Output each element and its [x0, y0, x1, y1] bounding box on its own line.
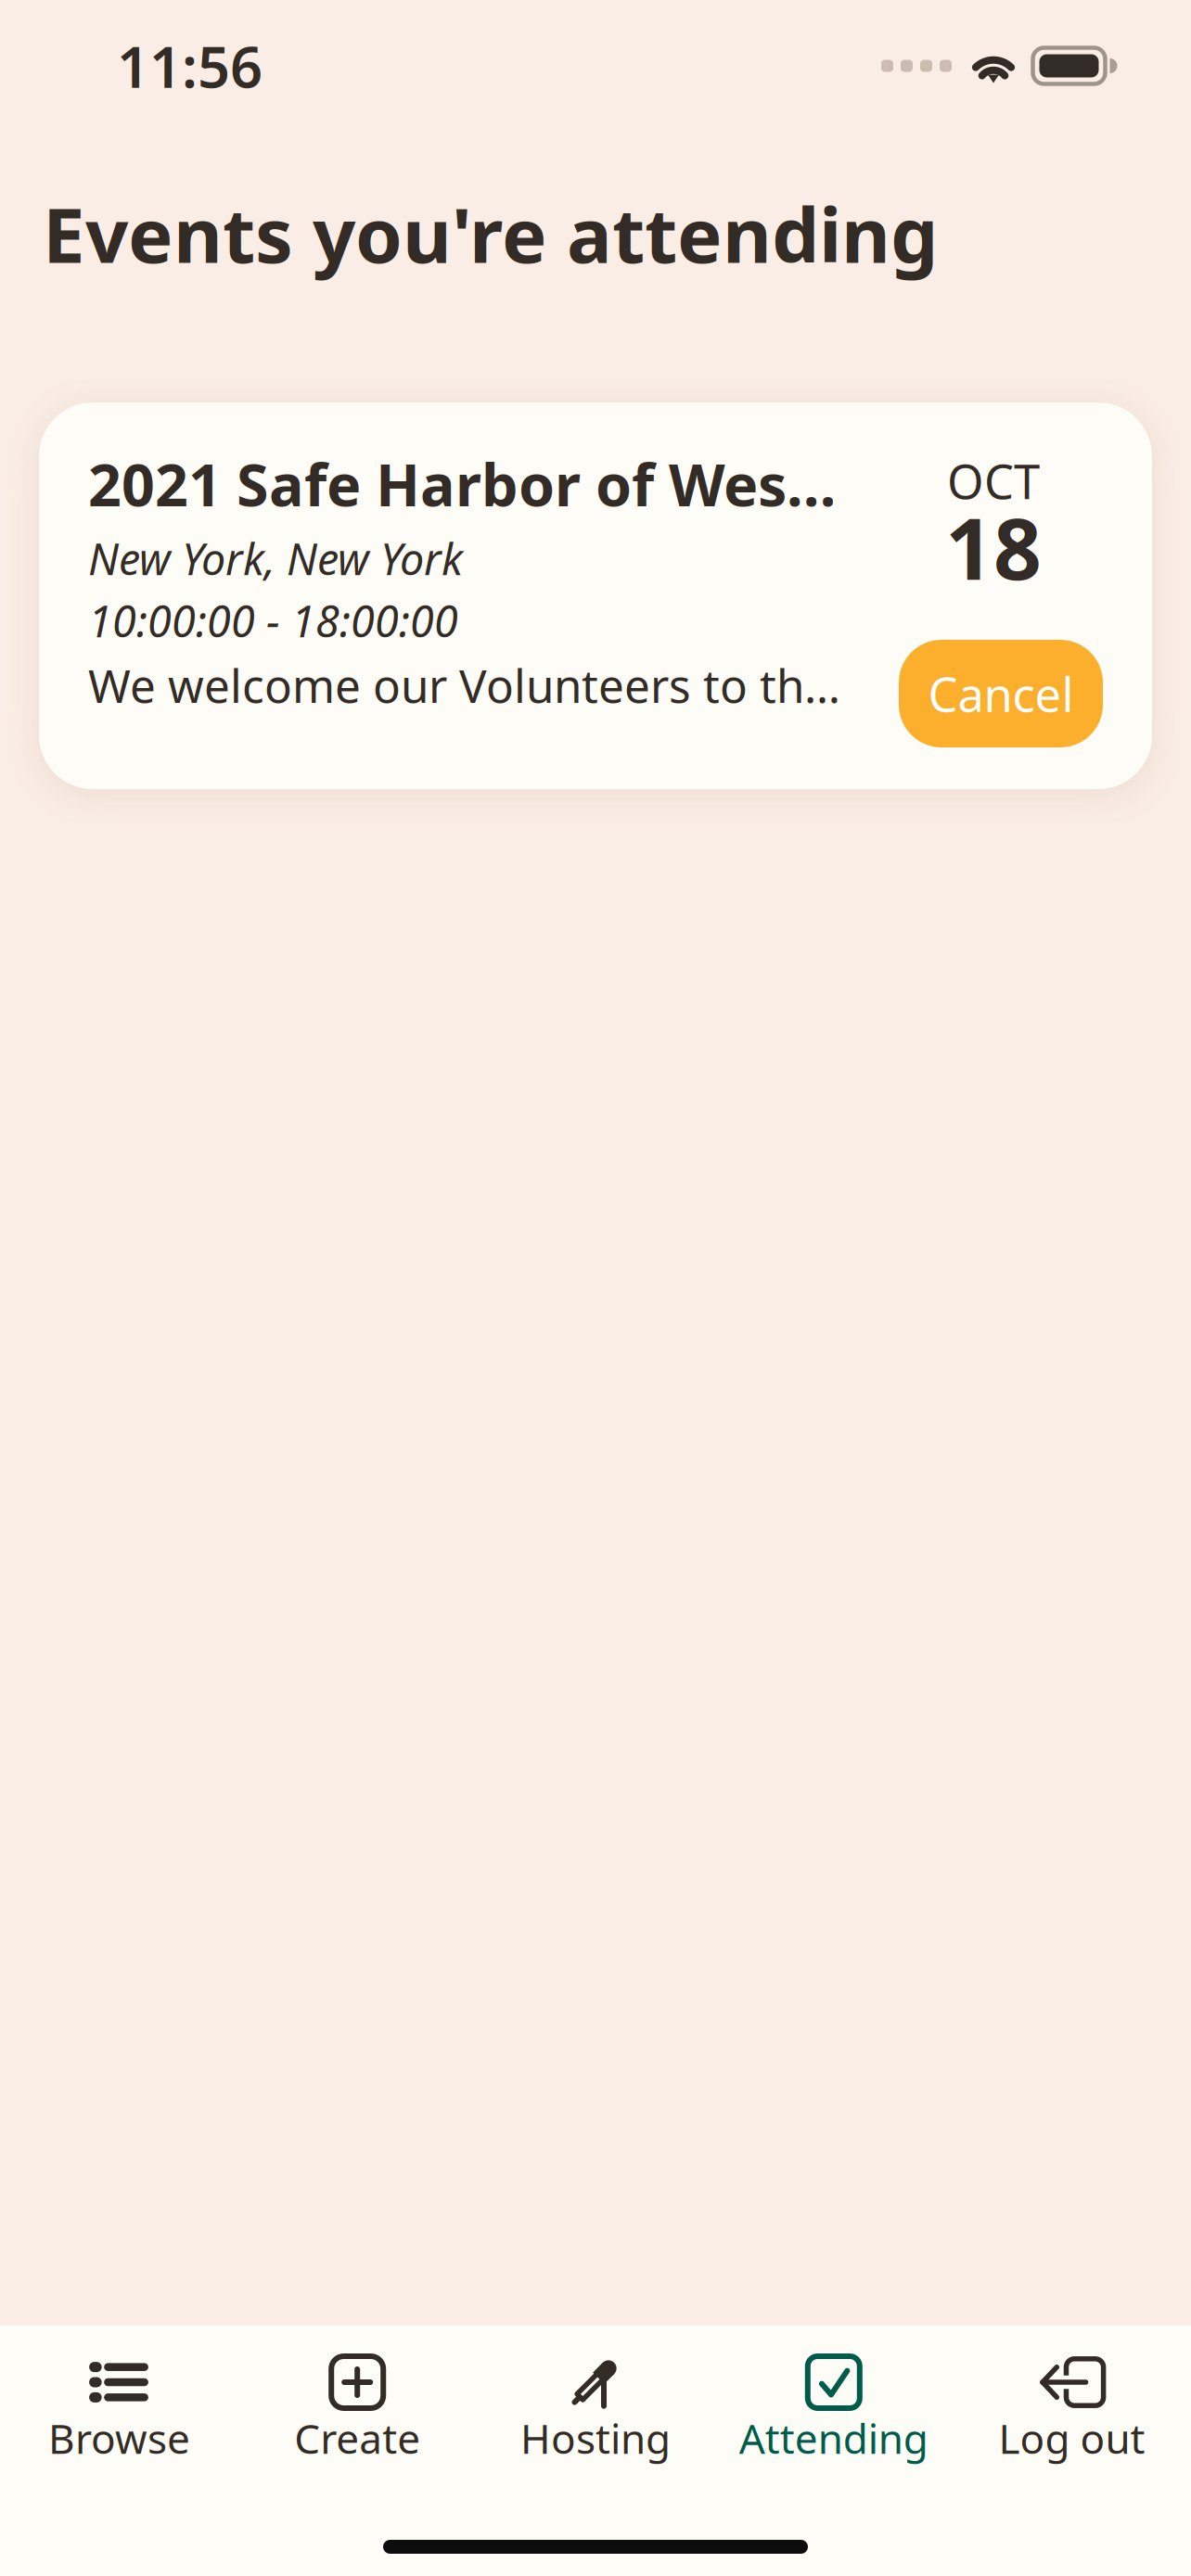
- staticText: 11:56: [117, 28, 263, 104]
- staticText: OCT: [947, 450, 1040, 512]
- button[interactable]: Hosting: [476, 2326, 715, 2478]
- button[interactable]: Create: [238, 2327, 476, 2478]
- staticText: Browse: [48, 2411, 190, 2465]
- staticText: 10:00:00 - 18:00:00: [88, 592, 458, 649]
- staticText: Hosting: [520, 2411, 671, 2465]
- staticText: 2021 Safe Harbor of Wes…: [88, 445, 837, 522]
- staticText: Cancel: [928, 662, 1074, 725]
- staticText: Attending: [739, 2411, 928, 2465]
- button[interactable]: Browse: [0, 2327, 238, 2478]
- staticText: Log out: [999, 2411, 1145, 2465]
- staticText: Events you're attending: [43, 184, 938, 284]
- staticText: Create: [294, 2411, 420, 2465]
- button[interactable]: Log out: [953, 2327, 1191, 2478]
- button[interactable]: Attending: [715, 2327, 953, 2478]
- staticText: We welcome our Volunteers to th…: [88, 655, 840, 716]
- staticText: New York, New York: [88, 530, 463, 587]
- staticText: 18: [945, 491, 1042, 603]
- button[interactable]: Cancel: [899, 640, 1103, 747]
